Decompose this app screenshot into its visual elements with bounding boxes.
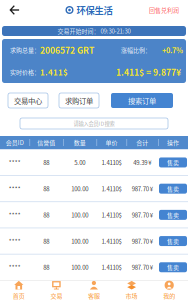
- button[interactable]: 市场: [113, 280, 150, 300]
- staticText: 会员ID: [6, 138, 24, 147]
- button[interactable]: 售卖: [159, 210, 187, 220]
- staticText: 交易中心: [14, 95, 42, 106]
- staticText: 987.70 ¥: [132, 263, 153, 272]
- staticText: 2006572 GRT: [40, 44, 94, 56]
- staticText: 实时价格：: [10, 68, 40, 76]
- staticText: 售卖: [167, 184, 179, 193]
- button[interactable]: 售卖: [159, 184, 187, 194]
- staticText: 1.411$ = 9.877¥: [116, 66, 181, 78]
- staticText: +0.7%: [162, 45, 183, 55]
- staticText: 涨幅比例：: [121, 46, 151, 54]
- staticText: 环保生活: [76, 3, 112, 17]
- staticText: 我的: [163, 291, 175, 300]
- staticText: 100.00: [71, 237, 88, 245]
- staticText: 信誉值: [37, 138, 55, 147]
- button[interactable]: Back: [0, 0, 29, 20]
- staticText: 交易开始时间： 09:30-21:30: [57, 27, 130, 35]
- staticText: ****: [9, 210, 21, 219]
- staticText: 987.70 ¥: [132, 210, 153, 219]
- button[interactable]: 求购订单: [59, 93, 99, 108]
- staticText: 合计: [136, 138, 148, 147]
- staticText: 请输入会员ID搜索: [73, 120, 114, 127]
- staticText: 100.00: [71, 210, 88, 219]
- staticText: 交易: [50, 291, 62, 300]
- staticText: 市场: [126, 291, 138, 300]
- button[interactable]: 回售兑利润: [140, 0, 188, 20]
- staticText: 1.4110$: [101, 237, 121, 245]
- staticText: 客服: [88, 291, 100, 300]
- staticText: ****: [9, 184, 21, 193]
- staticText: 88: [43, 237, 49, 245]
- button[interactable]: 首页: [0, 280, 38, 300]
- staticText: 1.4110$: [101, 158, 121, 167]
- staticText: 88: [43, 263, 49, 272]
- staticText: 1.4110$: [101, 184, 121, 193]
- staticText: 49.39 ¥: [133, 158, 151, 167]
- staticText: 987.70 ¥: [132, 237, 153, 245]
- staticText: 100.00: [71, 184, 88, 193]
- button[interactable]: 售卖: [159, 157, 187, 167]
- button[interactable]: 客服: [75, 280, 113, 300]
- staticText: 1.411$: [40, 66, 68, 78]
- staticText: ****: [9, 158, 21, 167]
- staticText: 987.70 ¥: [132, 184, 153, 193]
- staticText: 售卖: [167, 263, 179, 272]
- staticText: 搜索订单: [128, 95, 156, 106]
- staticText: ****: [9, 263, 21, 272]
- button[interactable]: 售卖: [159, 262, 187, 272]
- staticText: 求购订单: [65, 95, 93, 106]
- button[interactable]: 售卖: [159, 236, 187, 246]
- staticText: 售卖: [167, 210, 179, 219]
- staticText: 1.4110$: [101, 263, 121, 272]
- staticText: 操作: [167, 138, 179, 147]
- button[interactable]: 搜索订单: [111, 93, 173, 108]
- staticText: 回售兑利润: [149, 6, 179, 14]
- staticText: 100.00: [71, 263, 88, 272]
- staticText: 单价: [105, 138, 117, 147]
- staticText: 售卖: [167, 158, 179, 167]
- staticText: 5.00: [74, 158, 85, 167]
- staticText: 88: [43, 210, 49, 219]
- staticText: 数量: [74, 138, 86, 147]
- staticText: 88: [43, 184, 49, 193]
- staticText: 求购总量：: [10, 46, 40, 54]
- button[interactable]: 交易中心: [8, 93, 48, 108]
- staticText: ****: [9, 237, 21, 245]
- staticText: 88: [43, 158, 49, 167]
- button[interactable]: 请输入会员ID搜索: [20, 118, 168, 129]
- button[interactable]: 我的: [150, 280, 188, 300]
- staticText: 1.4110$: [101, 210, 121, 219]
- staticText: 售卖: [167, 237, 179, 245]
- staticText: 首页: [13, 291, 25, 300]
- button[interactable]: 交易: [38, 280, 75, 300]
